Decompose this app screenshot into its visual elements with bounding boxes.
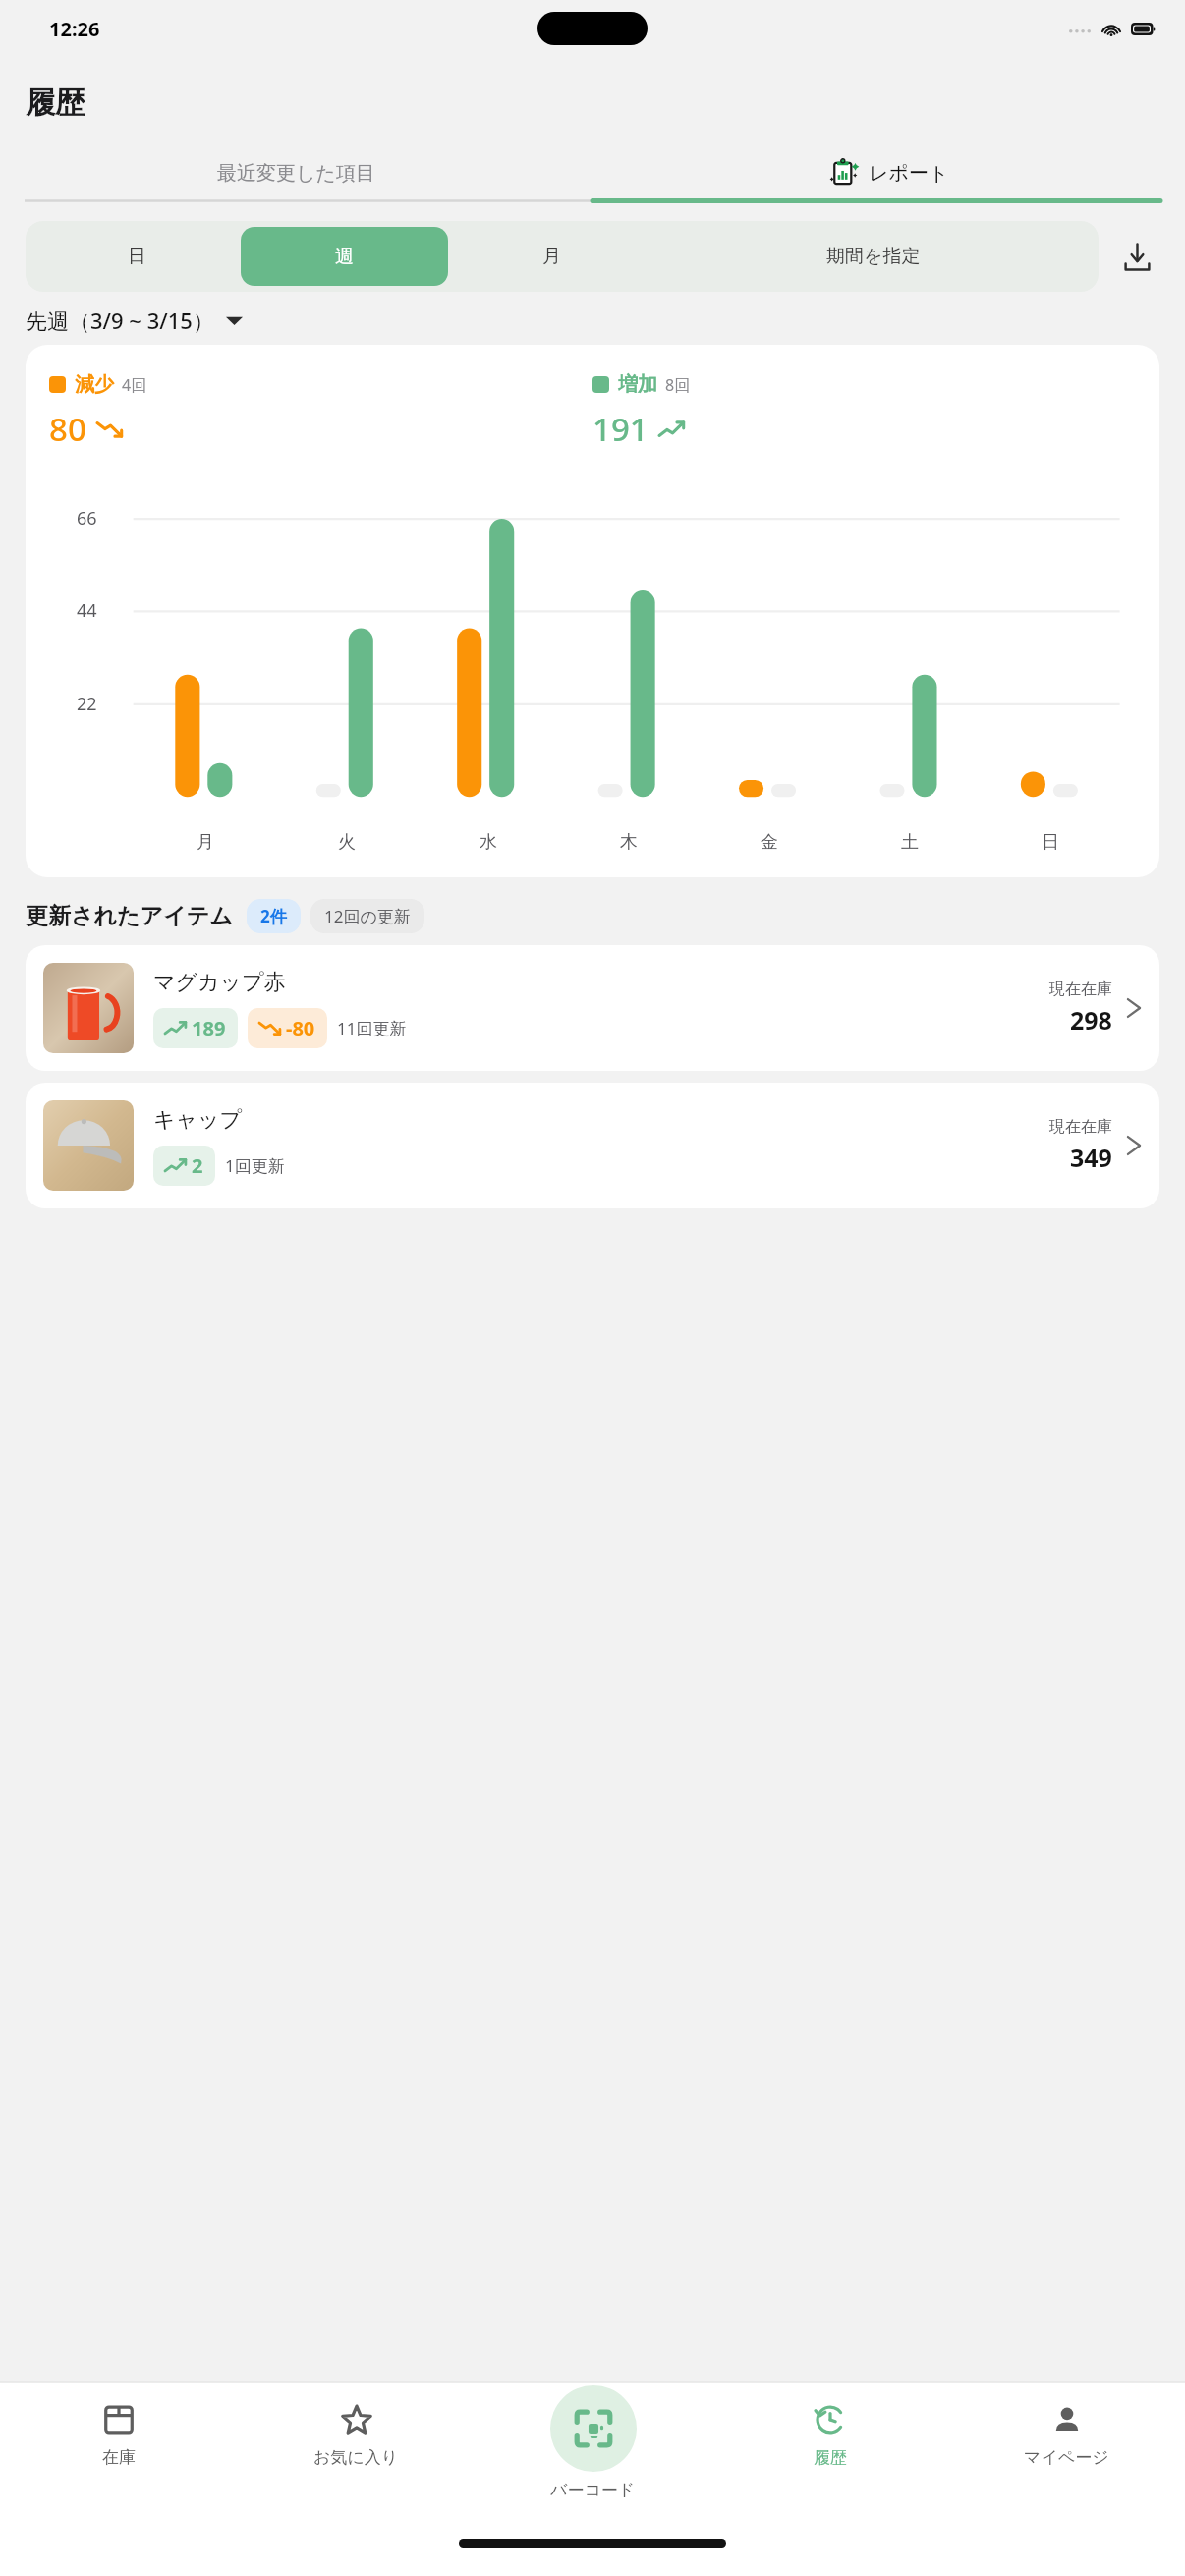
- staticText: お気に入り: [313, 2447, 399, 2468]
- staticText: 4回: [122, 374, 147, 396]
- staticText: 月: [197, 831, 214, 854]
- staticText: 履歴: [26, 84, 85, 122]
- staticText: 現在在庫: [1049, 980, 1112, 999]
- button[interactable]: 先週（3/9 ~ 3/15）: [26, 306, 243, 335]
- staticText: 週: [335, 245, 354, 268]
- staticText: バーコード: [550, 2480, 636, 2500]
- staticText: マイページ: [1024, 2447, 1109, 2468]
- staticText: 298: [1070, 1003, 1112, 1036]
- staticText: 日: [1042, 831, 1059, 854]
- staticText: 履歴: [814, 2447, 847, 2468]
- staticText: 11回更新: [337, 1017, 407, 1039]
- staticText: 189: [192, 1015, 226, 1041]
- button[interactable]: マイページ: [948, 2383, 1185, 2529]
- staticText: 土: [901, 831, 919, 854]
- staticText: 1回更新: [225, 1154, 285, 1177]
- staticText: レポート: [869, 161, 949, 186]
- staticText: 最近変更した項目: [217, 161, 375, 186]
- staticText: 現在在庫: [1049, 1117, 1112, 1137]
- staticText: 8回: [665, 374, 691, 396]
- button[interactable]: バーコード: [475, 2383, 711, 2529]
- staticText: 12:26: [49, 16, 100, 42]
- staticText: 期間を指定: [826, 245, 921, 268]
- staticText: 2件: [260, 905, 287, 927]
- button[interactable]: ダウンロード: [1114, 234, 1159, 279]
- staticText: -80: [286, 1015, 315, 1041]
- staticText: 在庫: [102, 2447, 136, 2468]
- button[interactable]: お気に入り: [238, 2383, 475, 2529]
- button[interactable]: 在庫: [0, 2383, 238, 2529]
- staticText: 12回の更新: [324, 905, 411, 927]
- button[interactable]: 日: [32, 227, 241, 286]
- staticText: キャップ: [153, 1106, 243, 1134]
- staticText: 増加: [618, 372, 657, 397]
- staticText: 191: [592, 407, 649, 451]
- staticText: 日: [128, 245, 146, 268]
- staticText: 金: [761, 831, 778, 854]
- staticText: 44: [77, 598, 97, 623]
- staticText: 水: [480, 831, 497, 854]
- staticText: 月: [542, 245, 561, 268]
- button[interactable]: 週: [241, 227, 448, 286]
- staticText: マグカップ赤: [153, 969, 286, 996]
- button[interactable]: キャップ: [26, 1083, 1159, 1208]
- button[interactable]: レポート: [592, 147, 1185, 198]
- staticText: 66: [77, 506, 97, 531]
- staticText: 先週（3/9 ~ 3/15）: [26, 306, 214, 335]
- staticText: 減少: [75, 372, 114, 397]
- button[interactable]: 最近変更した項目: [0, 147, 592, 198]
- button[interactable]: 期間を指定: [655, 227, 1092, 286]
- staticText: 木: [620, 831, 638, 854]
- staticText: 2: [192, 1152, 203, 1179]
- staticText: 80: [49, 407, 86, 451]
- staticText: 349: [1070, 1141, 1112, 1174]
- staticText: 更新されたアイテム: [26, 902, 233, 930]
- button[interactable]: 月: [448, 227, 655, 286]
- staticText: 22: [77, 692, 97, 716]
- button[interactable]: 履歴: [711, 2383, 948, 2529]
- button[interactable]: マグカップ赤: [26, 945, 1159, 1071]
- staticText: 火: [338, 831, 356, 854]
